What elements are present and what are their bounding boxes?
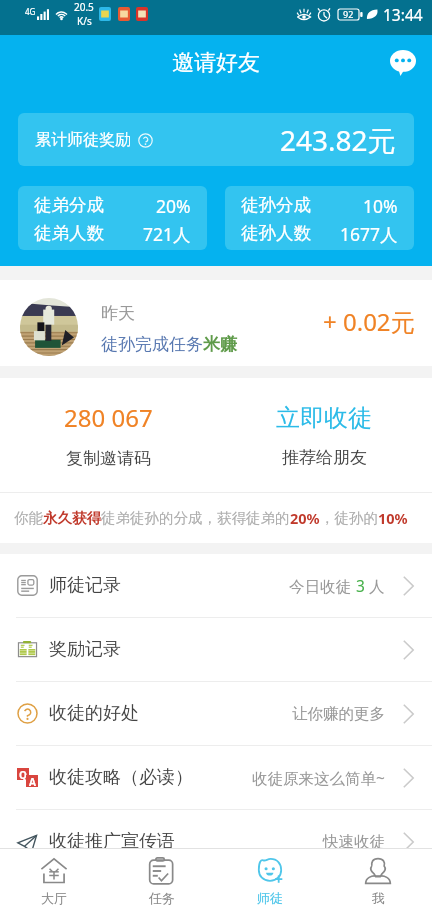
button[interactable]: 累计师徒奖励 bbox=[18, 113, 414, 166]
staticText: 4G bbox=[25, 6, 36, 17]
staticText: 获得徒弟的 bbox=[217, 509, 290, 527]
staticText: 徒孙分成 bbox=[241, 194, 311, 216]
staticText: 收徒原来这么简单~ bbox=[252, 767, 385, 788]
button[interactable]: 我 bbox=[324, 849, 432, 912]
staticText: 徒弟分成 bbox=[34, 194, 104, 216]
staticText: 你能 bbox=[14, 509, 43, 527]
staticText: 我 bbox=[372, 890, 385, 906]
button[interactable]: 师徒记录 bbox=[0, 554, 432, 617]
staticText: 收徒推广宣传语 bbox=[49, 830, 175, 853]
button[interactable]: 任务 bbox=[108, 849, 216, 912]
button[interactable]: 昨天 bbox=[0, 280, 432, 366]
staticText: 10% bbox=[363, 194, 398, 218]
staticText: 280 067 bbox=[64, 401, 153, 434]
staticText: 3 bbox=[356, 575, 365, 596]
button[interactable]: 师徒 bbox=[216, 849, 324, 912]
staticText: 永久获得 bbox=[43, 509, 101, 527]
button[interactable]: 奖励记录 bbox=[0, 618, 432, 681]
button[interactable]: 收徒的好处 bbox=[0, 682, 432, 745]
staticText: 师徒 bbox=[257, 890, 283, 906]
button[interactable]: 立即收徒 bbox=[216, 378, 432, 492]
staticText: 20% bbox=[156, 194, 191, 218]
button[interactable]: 收徒推广宣传语 bbox=[0, 810, 432, 873]
staticText: 1677人 bbox=[340, 222, 398, 246]
button[interactable]: Messages bbox=[386, 46, 420, 80]
staticText: K/s bbox=[77, 14, 92, 28]
staticText: 20% bbox=[290, 508, 320, 528]
staticText: 人 bbox=[365, 575, 385, 596]
staticText: 快速收徒 bbox=[323, 832, 385, 852]
staticText: 243.82元 bbox=[280, 121, 396, 159]
staticText: 累计师徒奖励 bbox=[35, 130, 131, 150]
staticText: + 0.02元 bbox=[323, 305, 415, 338]
button[interactable]: 徒孙分成 bbox=[225, 186, 414, 250]
button[interactable]: 280 067 bbox=[0, 378, 216, 492]
button[interactable]: Q bbox=[0, 746, 432, 809]
staticText: 任务 bbox=[149, 890, 175, 906]
staticText: 立即收徒 bbox=[276, 403, 372, 433]
button[interactable]: 大厅 bbox=[0, 849, 108, 912]
staticText: 13:44 bbox=[383, 4, 423, 25]
staticText: 奖励记录 bbox=[49, 638, 121, 661]
staticText: 收徒的好处 bbox=[49, 702, 139, 725]
staticText: 收徒攻略（必读） bbox=[49, 766, 193, 789]
staticText: 92 bbox=[343, 8, 354, 20]
staticText: 徒孙完成任务 bbox=[101, 334, 203, 355]
staticText: 邀请好友 bbox=[172, 49, 260, 77]
staticText: 徒弟人数 bbox=[34, 222, 104, 244]
staticText: 721人 bbox=[143, 222, 191, 246]
staticText: ，徒孙的 bbox=[320, 509, 378, 527]
staticText: 昨天 bbox=[101, 303, 135, 324]
staticText: 10% bbox=[378, 508, 408, 528]
staticText: 今日收徒 bbox=[289, 575, 356, 596]
staticText: 大厅 bbox=[41, 890, 67, 906]
button[interactable]: 你能 bbox=[0, 493, 432, 543]
button[interactable]: 徒弟分成 bbox=[18, 186, 207, 250]
staticText: 20.5 bbox=[74, 0, 94, 14]
staticText: 徒孙人数 bbox=[241, 222, 311, 244]
staticText: 米赚 bbox=[203, 334, 237, 355]
staticText: 让你赚的更多 bbox=[292, 704, 385, 724]
staticText: 推荐给朋友 bbox=[282, 447, 367, 468]
staticText: Q bbox=[19, 768, 27, 780]
staticText: 复制邀请码 bbox=[66, 448, 151, 469]
staticText: A bbox=[29, 775, 36, 787]
staticText: 师徒记录 bbox=[49, 574, 121, 597]
staticText: 徒弟徒孙的分成， bbox=[101, 509, 217, 527]
